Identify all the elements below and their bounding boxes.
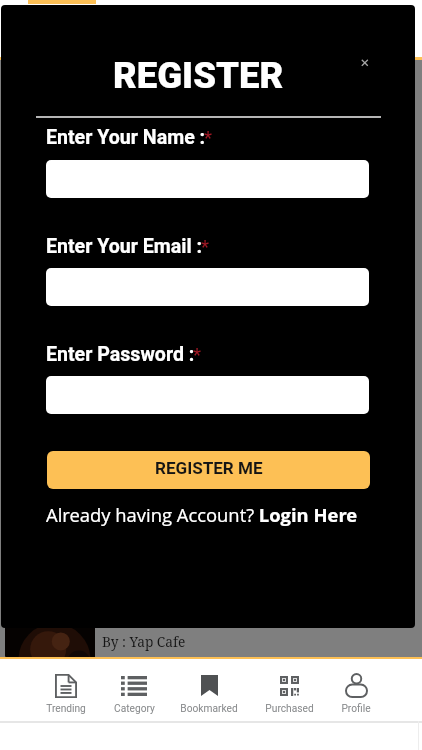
button[interactable]: Bookmarked (175, 672, 243, 722)
staticText: Bookmarked (180, 703, 238, 715)
staticText: * (201, 237, 209, 258)
staticText: Purchased (265, 703, 314, 715)
button[interactable]: Kuch Khaas yeh Jeevan hai Zindagi aur Ku… (5, 605, 414, 657)
button[interactable] (46, 376, 369, 414)
staticText: Profile (341, 703, 371, 715)
button[interactable]: Close dialog (351, 48, 379, 76)
staticText: REGISTER ME (155, 458, 263, 478)
staticText: Trending (46, 703, 86, 715)
staticText: Enter Your Email : (46, 235, 203, 258)
button[interactable]: Purchased (255, 672, 323, 722)
staticText: Enter Password : (46, 343, 195, 366)
staticText: * (204, 128, 212, 149)
button[interactable]: REGISTER ME (47, 451, 370, 489)
staticText: Category (114, 703, 155, 715)
button[interactable]: Trending (32, 672, 100, 722)
staticText: By : Yap Cafe (102, 632, 186, 651)
staticText: ✕ (360, 56, 370, 69)
button[interactable] (46, 160, 369, 198)
button[interactable]: Already having Account? Login Here (46, 502, 358, 527)
button[interactable] (46, 268, 369, 306)
button[interactable]: Category (100, 672, 168, 722)
staticText: Enter Your Name : (46, 126, 206, 149)
staticText: REGISTER (113, 54, 284, 97)
button[interactable]: Profile (322, 672, 390, 722)
staticText: * (193, 345, 201, 366)
